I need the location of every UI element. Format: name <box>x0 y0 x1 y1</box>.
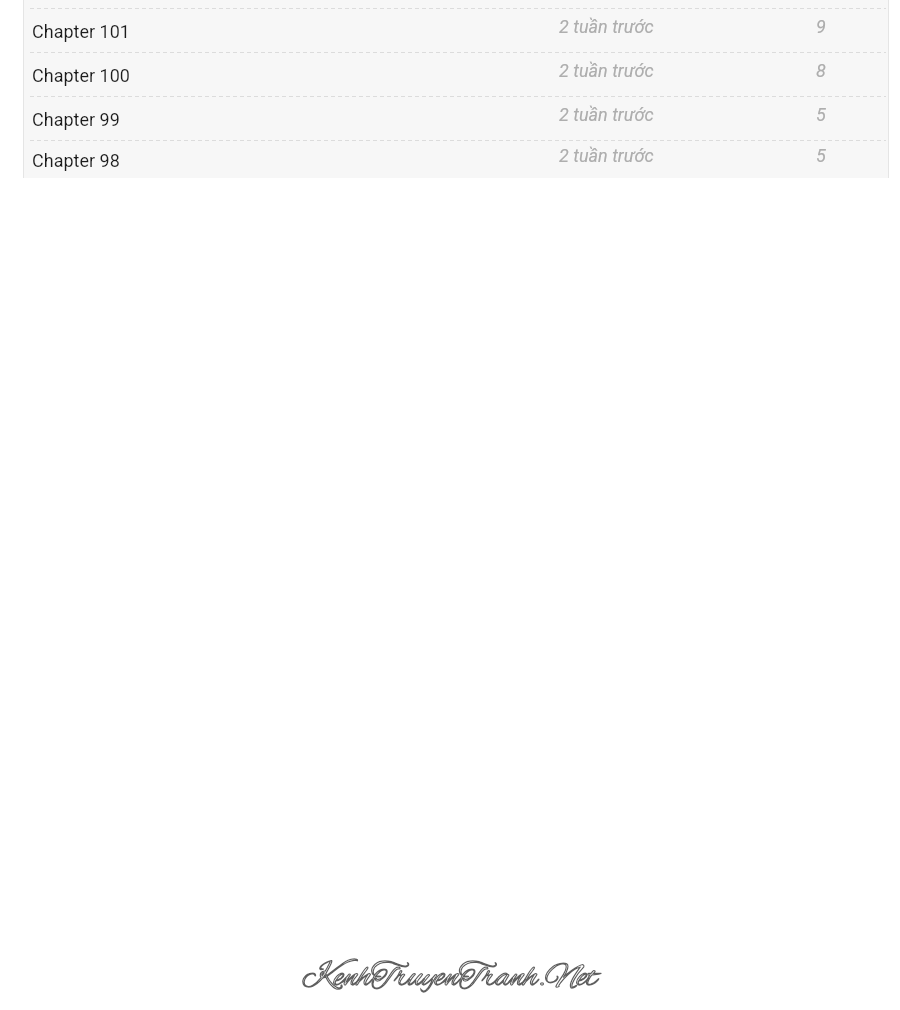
staticText: 2 tuần trước <box>559 16 654 37</box>
staticText: Chapter 101 <box>32 21 130 42</box>
staticText: Chapter 100 <box>32 65 130 86</box>
staticText: 2 tuần trước <box>559 145 654 166</box>
staticText: KenhTruyenTranh.Net <box>302 956 598 1000</box>
other: KenhTruyenTranh.Net <box>302 956 598 1000</box>
button[interactable]: Chapter 101 <box>23 8 889 52</box>
staticText: 9 <box>816 16 826 37</box>
staticText: 5 <box>816 104 826 125</box>
staticText: Chapter 99 <box>32 109 120 130</box>
button[interactable]: Chapter 100 <box>23 52 889 96</box>
staticText: 2 tuần trước <box>559 60 654 81</box>
staticText: 5 <box>816 145 826 166</box>
staticText: 2 tuần trước <box>559 104 654 125</box>
staticText: 8 <box>816 60 826 81</box>
button[interactable]: Chapter 99 <box>23 96 889 140</box>
staticText: Chapter 98 <box>32 150 120 171</box>
button[interactable]: Chapter 98 <box>23 140 889 178</box>
